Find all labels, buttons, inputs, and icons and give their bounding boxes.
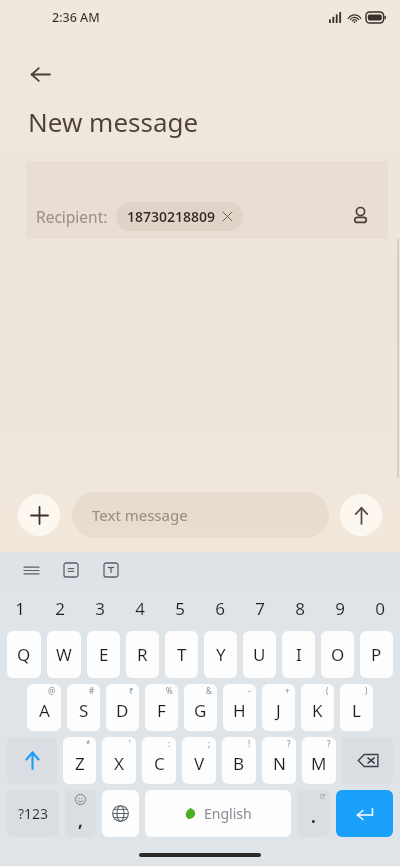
staticText: I [296, 643, 302, 666]
button[interactable]: R [126, 631, 159, 678]
staticText: New message [28, 104, 199, 139]
button[interactable]: Add attachment [18, 494, 60, 536]
button[interactable]: ?123 [7, 790, 59, 837]
button[interactable]: * [63, 737, 96, 784]
button[interactable]: ! [222, 737, 256, 784]
staticText: 9 [335, 597, 345, 620]
staticText: Recipient: [36, 206, 108, 227]
button[interactable]: 3 [80, 588, 120, 628]
staticText: !? [320, 791, 326, 801]
button[interactable]: Enter [336, 790, 393, 837]
button[interactable]: - [223, 684, 256, 731]
staticText: * [86, 738, 91, 749]
button[interactable]: E [87, 631, 120, 678]
button[interactable]: ₹ [106, 684, 139, 731]
staticText: ) [365, 685, 368, 696]
staticText: G [194, 699, 207, 722]
button[interactable]: 5 [160, 588, 200, 628]
staticText: F [157, 699, 166, 722]
button[interactable]: 9 [320, 588, 360, 628]
button[interactable]: : [142, 737, 176, 784]
staticText: Z [75, 752, 85, 775]
button[interactable]: Clipboard [58, 557, 84, 583]
staticText: + [285, 685, 290, 696]
staticText: U [253, 643, 266, 666]
staticText: M [311, 752, 327, 775]
button[interactable]: O [321, 631, 354, 678]
button[interactable]: ; [182, 737, 216, 784]
staticText: , [78, 809, 83, 832]
button[interactable]: Shift [7, 737, 57, 784]
button[interactable]: Change language [102, 790, 139, 837]
staticText: ? [327, 738, 331, 749]
button[interactable]: # [67, 684, 100, 731]
staticText: 4 [135, 597, 145, 620]
staticText: T [177, 643, 187, 666]
staticText: 8 [295, 597, 305, 620]
staticText: R [137, 643, 148, 666]
button[interactable]: 6 [200, 588, 240, 628]
staticText: 2:36 AM [52, 9, 100, 26]
staticText: E [99, 643, 109, 666]
staticText: D [116, 699, 129, 722]
button[interactable]: 18730218809 [116, 202, 243, 231]
button[interactable]: W [47, 631, 81, 678]
staticText: - [248, 685, 251, 696]
button[interactable]: @ [27, 684, 61, 731]
button[interactable]: English [145, 790, 291, 837]
button[interactable]: ' [102, 737, 136, 784]
staticText: ?123 [18, 804, 49, 823]
button[interactable]: Send [340, 494, 382, 536]
staticText: N [273, 752, 286, 775]
staticText: V [194, 752, 205, 775]
staticText: & [206, 685, 212, 696]
staticText: 1 [15, 597, 25, 620]
button[interactable]: Backspace [342, 737, 393, 784]
button[interactable]: Text message [72, 492, 329, 538]
button[interactable]: + [262, 684, 295, 731]
button[interactable]: Y [204, 631, 237, 678]
staticText: ! [248, 738, 251, 749]
staticText: ' [129, 738, 131, 749]
button[interactable]: T [165, 631, 198, 678]
staticText: ₹ [129, 685, 134, 696]
button[interactable]: ) [340, 684, 373, 731]
button[interactable]: & [184, 684, 217, 731]
button[interactable]: 2 [40, 588, 80, 628]
button[interactable]: ( [301, 684, 334, 731]
staticText: ( [326, 685, 329, 696]
staticText: A [39, 699, 50, 722]
button[interactable]: % [145, 684, 178, 731]
staticText: H [233, 699, 246, 722]
button[interactable]: Text style [98, 557, 124, 583]
button[interactable]: 4 [120, 588, 160, 628]
button[interactable]: ? [302, 737, 336, 784]
staticText: 7 [255, 597, 265, 620]
staticText: 0 [375, 597, 385, 620]
staticText: English [204, 804, 252, 823]
staticText: B [233, 752, 245, 775]
button[interactable]: Comma and emoji [65, 790, 96, 837]
button[interactable]: Menu [18, 557, 44, 583]
staticText: C [154, 752, 165, 775]
button[interactable]: I [282, 631, 315, 678]
button[interactable]: Q [7, 631, 41, 678]
staticText: Text message [92, 505, 188, 525]
button[interactable]: Pick contact [342, 197, 378, 233]
button[interactable]: U [243, 631, 276, 678]
staticText: Y [216, 643, 226, 666]
button[interactable]: 0 [360, 588, 400, 628]
button[interactable]: 7 [240, 588, 280, 628]
staticText: 2 [55, 597, 65, 620]
button[interactable]: 1 [0, 588, 40, 628]
staticText: @ [48, 685, 56, 696]
staticText: W [56, 643, 72, 666]
staticText: P [371, 643, 382, 666]
staticText: 3 [95, 597, 105, 620]
button[interactable]: ? [262, 737, 296, 784]
button[interactable]: P [360, 631, 393, 678]
button[interactable]: !? [297, 790, 330, 837]
staticText: Q [17, 643, 31, 666]
button[interactable]: 8 [280, 588, 320, 628]
button[interactable]: Back [20, 54, 60, 94]
